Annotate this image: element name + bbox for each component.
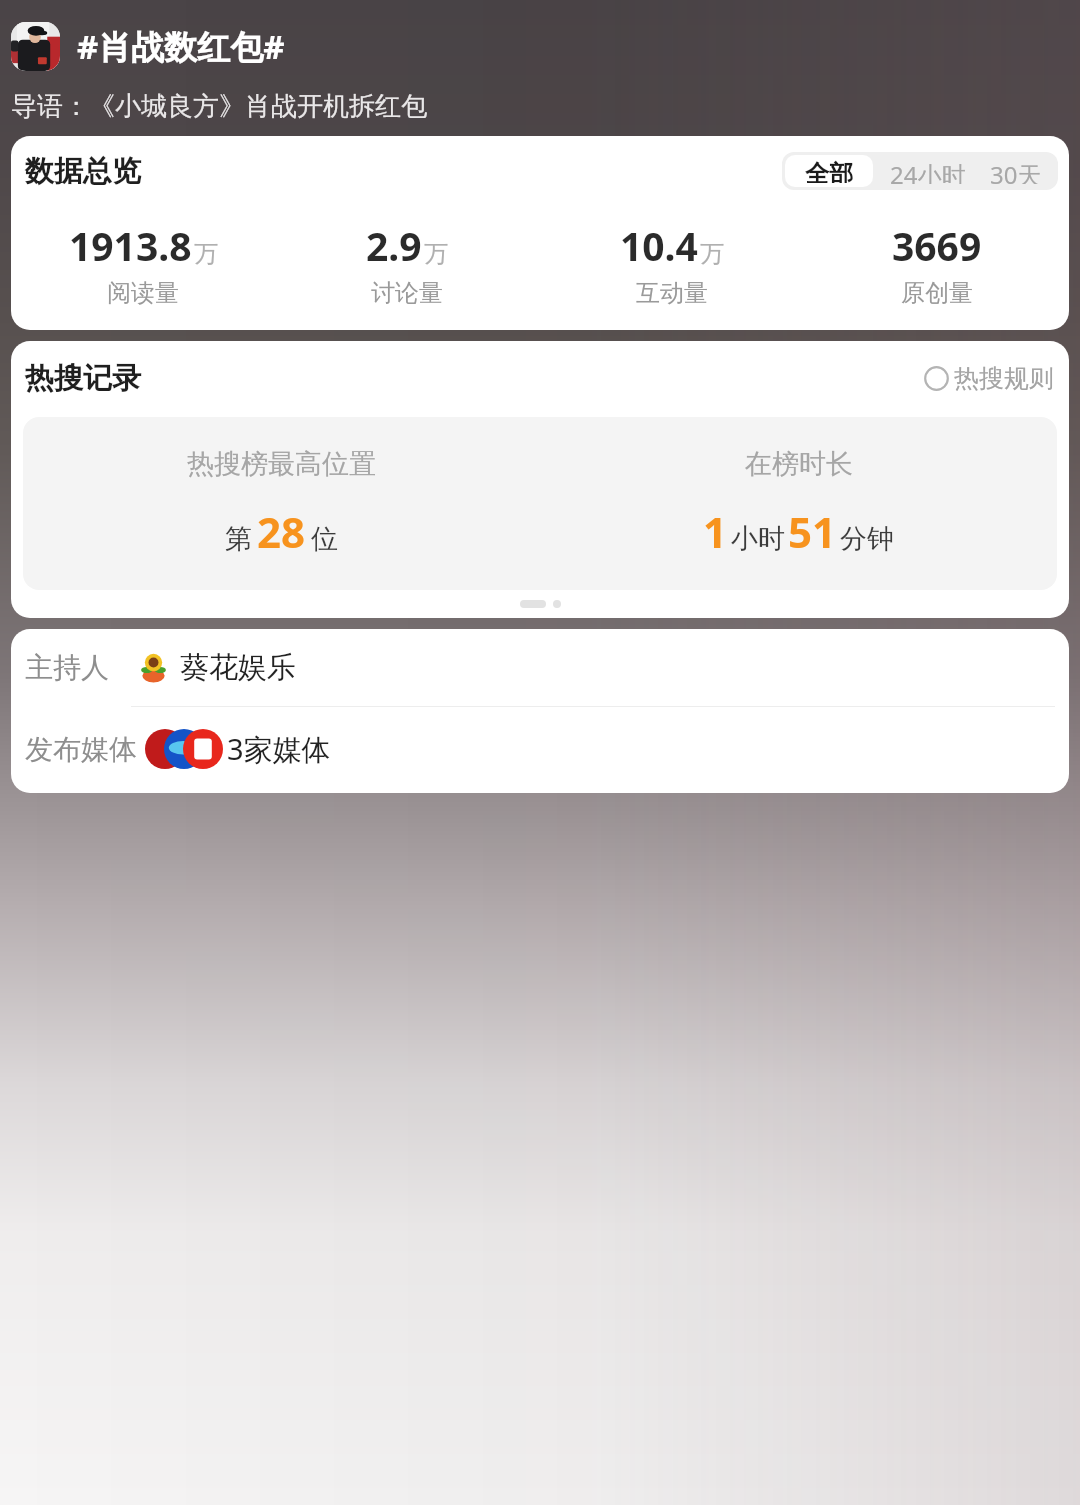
button[interactable]: 10.4	[539, 219, 804, 308]
staticText: 30天	[990, 158, 1042, 184]
staticText: 10.4	[620, 219, 698, 272]
staticText: 数据总览	[25, 153, 141, 190]
staticText: 阅读量	[107, 278, 179, 308]
other: 热搜规则说明	[924, 366, 949, 391]
button[interactable]: 热搜榜最高位置	[23, 417, 1057, 590]
button[interactable]: 24小时	[876, 152, 980, 190]
button[interactable]: 3669	[804, 219, 1069, 308]
staticText: 分钟	[840, 522, 894, 556]
staticText: 位	[311, 522, 338, 556]
staticText: 互动量	[636, 278, 708, 308]
staticText: 万	[424, 239, 448, 269]
staticText: 3669	[892, 219, 982, 272]
staticText: 万	[700, 239, 724, 269]
staticText: 51	[788, 503, 837, 560]
staticText: 主持人	[25, 650, 109, 685]
staticText: 1	[703, 503, 728, 560]
staticText: #肖战数红包#	[77, 24, 285, 69]
button[interactable]: 主持人	[11, 649, 1069, 686]
staticText: 第	[225, 522, 252, 556]
staticText: 热搜规则	[954, 363, 1054, 394]
staticText: 2.9	[366, 219, 422, 272]
staticText: 28	[257, 503, 306, 560]
button[interactable]: 1913.8	[11, 219, 275, 308]
staticText: 原创量	[901, 278, 973, 308]
button[interactable]: 发布媒体	[11, 729, 1069, 769]
staticText: 讨论量	[371, 278, 443, 308]
staticText: 小时	[731, 522, 785, 556]
button[interactable]: 2.9	[275, 219, 539, 308]
staticText: 万	[194, 239, 218, 269]
staticText: 在榜时长	[745, 447, 853, 481]
staticText: 热搜记录	[25, 360, 141, 397]
staticText: 3家媒体	[227, 729, 331, 769]
button[interactable]: 热搜规则说明	[922, 359, 1056, 398]
button[interactable]: 全部	[785, 155, 873, 187]
staticText: 发布媒体	[25, 732, 137, 767]
staticText: 导语：《小城良方》肖战开机拆红包	[11, 90, 427, 123]
staticText: 热搜榜最高位置	[187, 447, 376, 481]
staticText: 1913.8	[69, 219, 192, 272]
staticText: 全部	[805, 159, 853, 183]
button[interactable]: 30天	[980, 152, 1058, 190]
staticText: 葵花娱乐	[180, 649, 296, 686]
staticText: 24小时	[890, 158, 966, 184]
